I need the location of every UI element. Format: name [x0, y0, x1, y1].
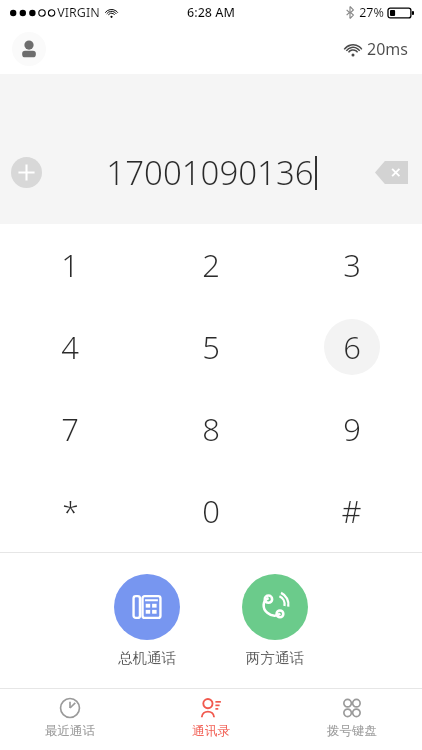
button[interactable]: #: [281, 470, 422, 552]
staticText: #: [341, 490, 362, 532]
button[interactable]: 5: [140, 306, 281, 388]
staticText: 总机通话: [118, 649, 176, 667]
button[interactable]: 3: [281, 224, 422, 306]
button[interactable]: 通讯录: [140, 689, 281, 746]
button[interactable]: 最近通话: [0, 689, 140, 746]
staticText: 4: [61, 326, 79, 368]
button[interactable]: 7: [0, 388, 140, 470]
staticText: 1: [61, 244, 79, 286]
button[interactable]: Backspace: [375, 161, 408, 184]
button[interactable]: Add: [11, 157, 42, 188]
button[interactable]: 6: [281, 306, 422, 388]
button[interactable]: 9: [281, 388, 422, 470]
button[interactable]: 两方通话: [242, 574, 308, 667]
button[interactable]: *: [0, 470, 140, 552]
staticText: 6:28 AM: [187, 4, 235, 21]
button[interactable]: 拨号键盘: [281, 689, 422, 746]
staticText: VIRGIN: [57, 4, 100, 21]
staticText: 通讯录: [192, 723, 230, 739]
staticText: 5: [202, 326, 220, 368]
button[interactable]: 1: [0, 224, 140, 306]
staticText: 3: [343, 244, 361, 286]
button[interactable]: 总机通话: [114, 574, 180, 667]
staticText: 27%: [359, 4, 384, 21]
staticText: 8: [202, 408, 220, 450]
staticText: 拨号键盘: [327, 723, 377, 739]
staticText: 9: [343, 408, 361, 450]
staticText: 17001090136: [106, 150, 314, 195]
staticText: 最近通话: [45, 723, 95, 739]
staticText: 2: [202, 244, 220, 286]
button[interactable]: 4: [0, 306, 140, 388]
button[interactable]: 0: [140, 470, 281, 552]
staticText: 20ms: [367, 38, 408, 60]
staticText: 6: [343, 326, 361, 368]
button[interactable]: 2: [140, 224, 281, 306]
button[interactable]: 8: [140, 388, 281, 470]
button[interactable]: Profile: [12, 32, 46, 66]
button[interactable]: 20ms: [344, 38, 408, 60]
staticText: 7: [61, 408, 79, 450]
staticText: 0: [202, 490, 220, 532]
staticText: 两方通话: [246, 649, 304, 667]
staticText: *: [62, 491, 79, 532]
